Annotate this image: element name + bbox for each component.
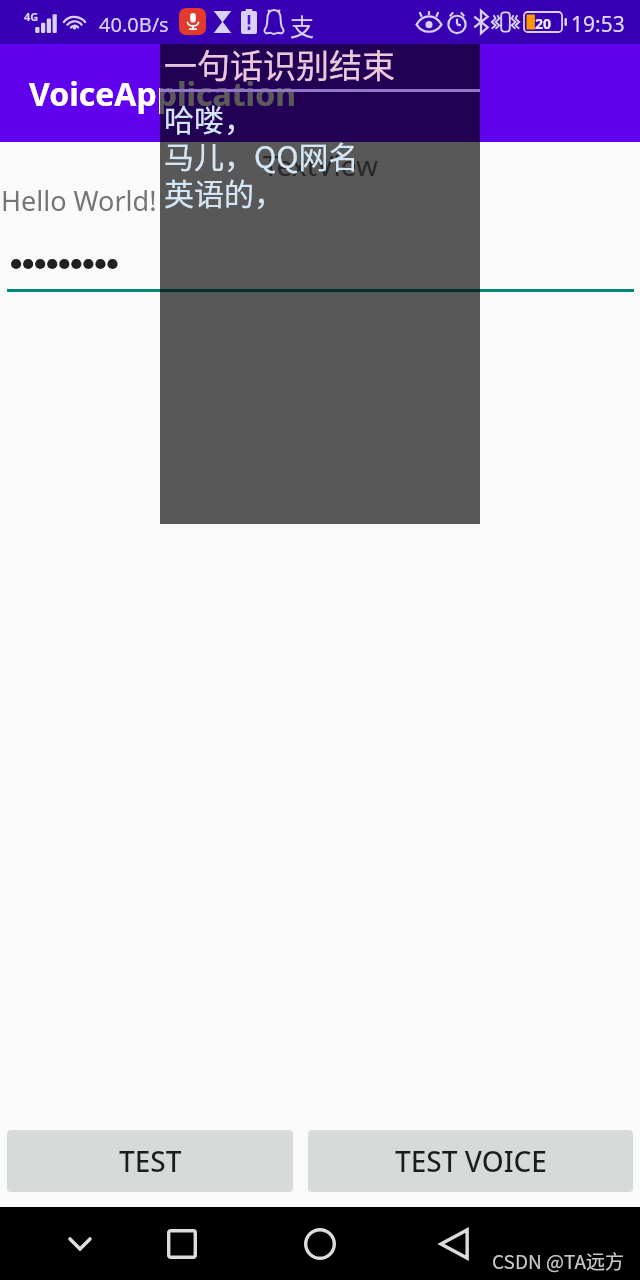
staticText: 19:53	[571, 10, 625, 39]
button[interactable]: Hide keyboard	[46, 1207, 114, 1280]
staticText: 哈喽，	[164, 96, 254, 139]
button[interactable]: Back	[421, 1207, 489, 1280]
staticText: 4G	[24, 9, 39, 24]
staticText: 40.0B/s	[99, 11, 169, 38]
button[interactable]: Recent apps	[148, 1207, 216, 1280]
staticText: TEST VOICE	[395, 1142, 547, 1180]
staticText: Hello World!	[1, 182, 157, 219]
staticText: 一句话识别结束	[164, 40, 395, 88]
staticText: 20	[535, 14, 552, 33]
staticText: 马儿，QQ网名	[164, 133, 359, 176]
staticText: 英语的，	[164, 170, 284, 213]
staticText: TextView	[263, 146, 379, 184]
staticText: VoiceApplication	[29, 72, 296, 116]
staticText: TEST	[119, 1142, 182, 1180]
staticText: 支	[290, 8, 314, 43]
button[interactable]: TEST VOICE	[308, 1130, 633, 1192]
button[interactable]: Home	[286, 1207, 354, 1280]
staticText: CSDN @TA远方	[492, 1247, 625, 1275]
button[interactable]: TEST	[7, 1130, 293, 1192]
